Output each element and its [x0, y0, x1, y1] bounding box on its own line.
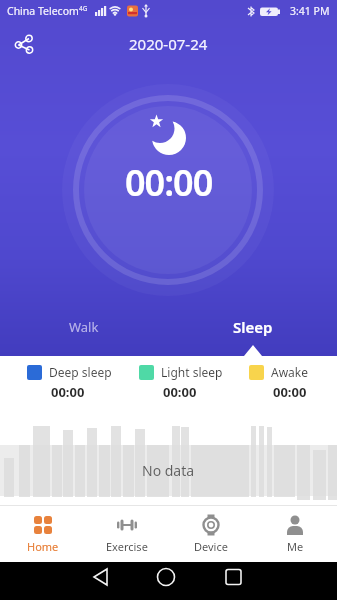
staticText: 00:00 [163, 383, 197, 401]
button[interactable] [8, 28, 40, 60]
button[interactable] [204, 562, 275, 600]
staticText: 00:00 [51, 383, 85, 401]
staticText: Exercise [106, 539, 148, 554]
staticText: 00:00 [273, 383, 307, 401]
staticText: Me [287, 539, 304, 554]
staticText: Light sleep [161, 364, 223, 380]
staticText: 2020-07-24 [129, 34, 208, 54]
staticText: Home [27, 539, 59, 554]
button[interactable]: Device [169, 506, 253, 562]
staticText: 00:00 [125, 158, 213, 207]
button[interactable]: Exercise [85, 506, 169, 562]
button[interactable] [62, 562, 133, 600]
button[interactable]: Walk [0, 314, 168, 340]
staticText: Device [194, 539, 228, 554]
staticText: Deep sleep [49, 364, 112, 380]
button[interactable]: Home [0, 506, 85, 562]
staticText: Awake [271, 364, 309, 380]
staticText: Sleep [233, 317, 273, 337]
staticText: No data [142, 461, 195, 480]
staticText: 4G [79, 4, 88, 13]
staticText: Walk [69, 318, 99, 336]
staticText: China Telecom [7, 4, 79, 18]
button[interactable] [133, 562, 204, 600]
button[interactable]: Sleep [168, 314, 337, 340]
button[interactable]: Me [253, 506, 337, 562]
staticText: 3:41 PM [290, 4, 330, 18]
